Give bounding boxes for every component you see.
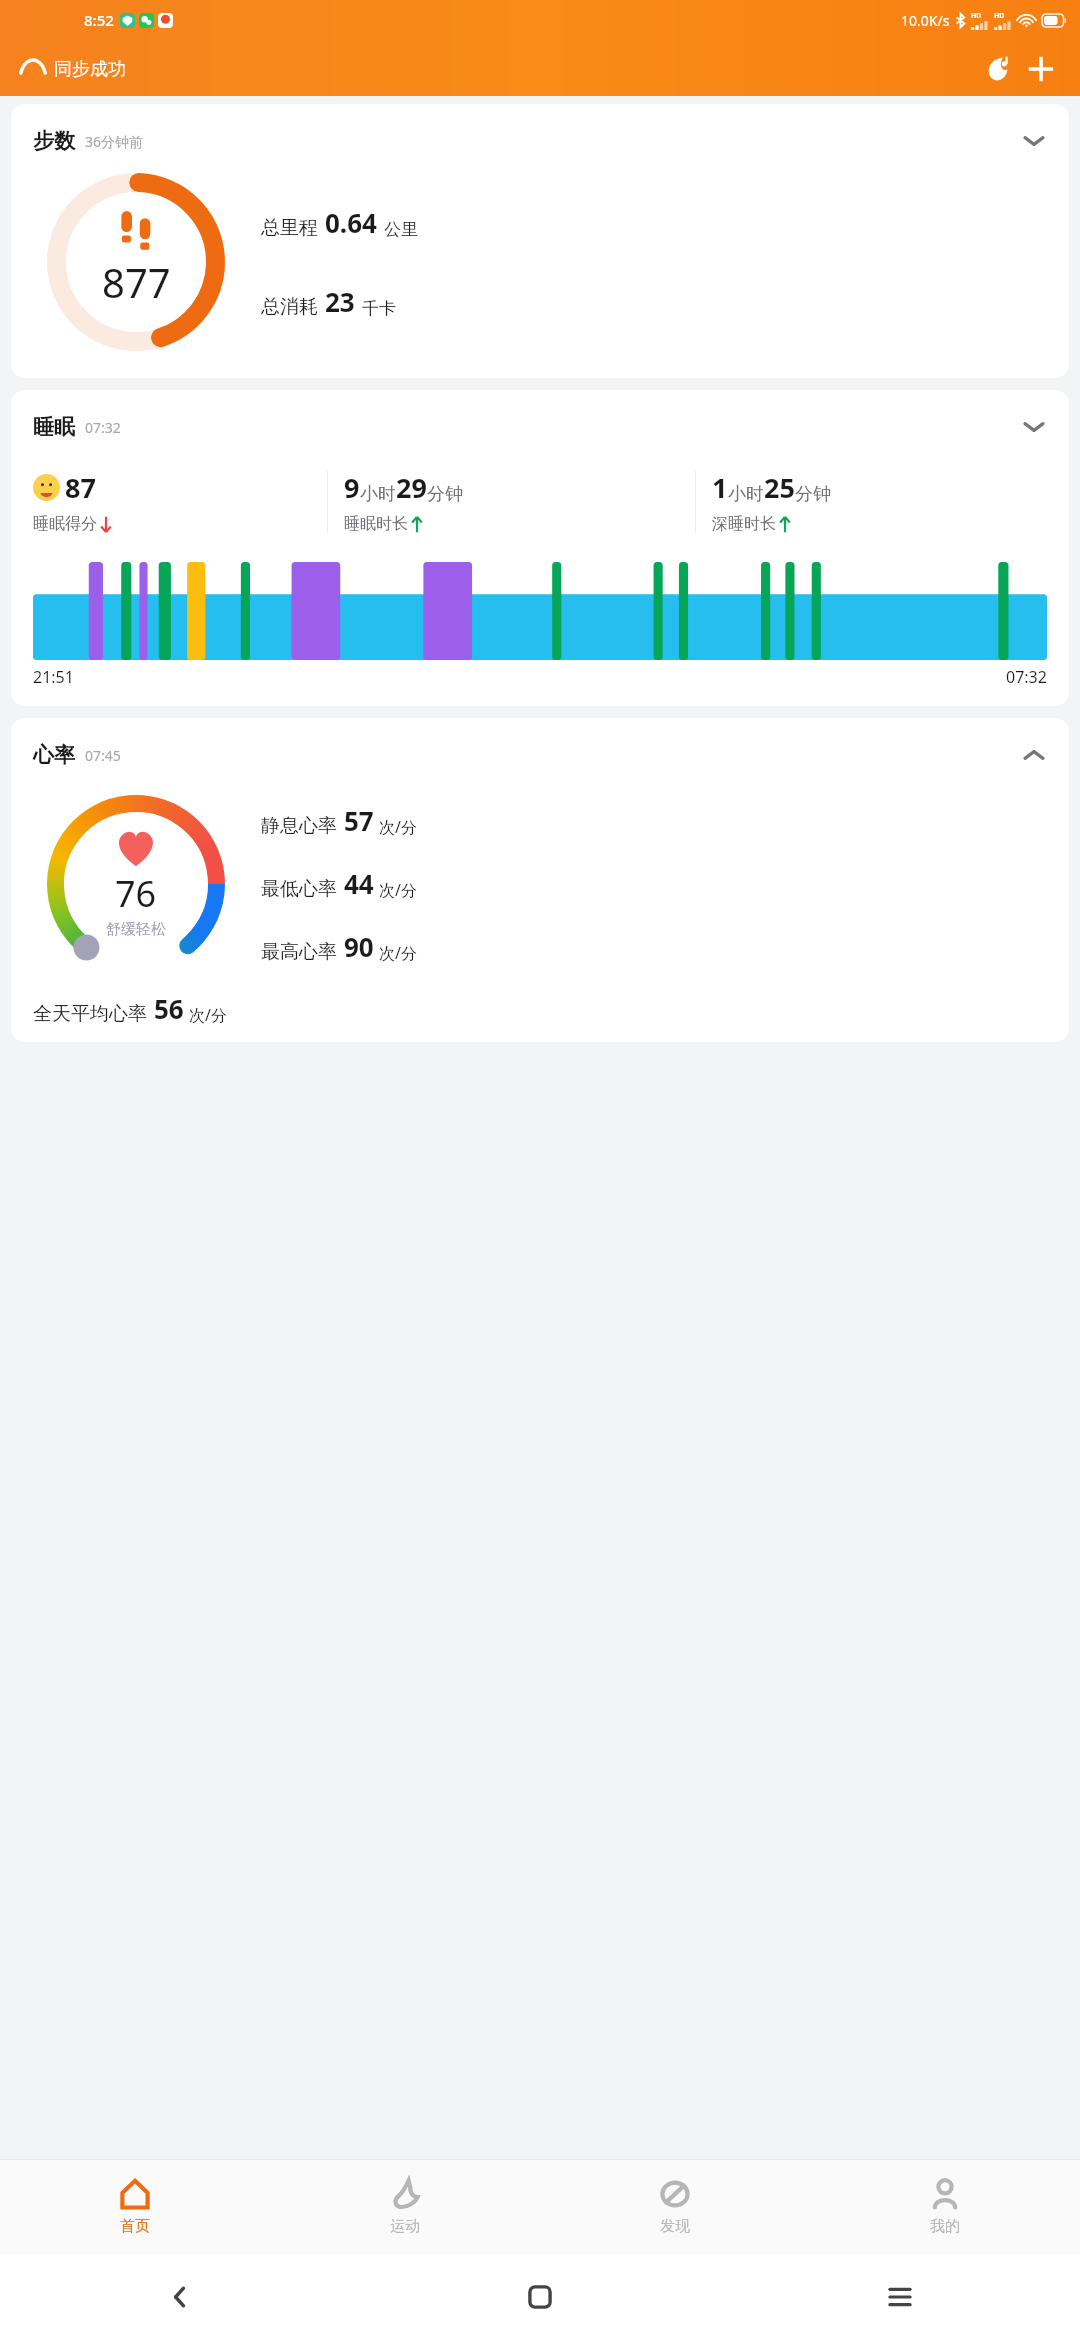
staticText: 07:32 (1006, 666, 1047, 688)
staticText: 最低心率 (261, 877, 337, 901)
staticText: 8:52 (84, 10, 114, 30)
staticText: 全天平均心率 (33, 1002, 147, 1026)
staticText: 877 (102, 255, 171, 309)
staticText: 睡眠 (33, 414, 75, 440)
staticText: 同步成功 (54, 58, 126, 81)
staticText: 心率 (33, 742, 75, 768)
button[interactable]: 睡眠 (11, 390, 1069, 706)
staticText: 0.64 (325, 205, 377, 240)
staticText: 9 (344, 469, 360, 506)
staticText: 静息心率 (261, 814, 337, 838)
staticText: HD (971, 11, 982, 21)
staticText: 分钟 (795, 483, 831, 506)
button[interactable]: Back (0, 2254, 360, 2340)
button[interactable]: 首页 (0, 2160, 270, 2254)
staticText: 44 (344, 866, 374, 901)
button[interactable]: 步数 (11, 104, 1069, 378)
button[interactable]: 我的 (810, 2160, 1080, 2254)
staticText: 次/分 (379, 816, 417, 838)
staticText: 运动 (390, 2217, 420, 2236)
staticText: 次/分 (379, 879, 417, 901)
staticText: 首页 (120, 2217, 150, 2236)
button[interactable]: Recents (720, 2254, 1080, 2340)
button[interactable]: Sleep music (976, 48, 1018, 90)
staticText: 07:32 (85, 418, 121, 437)
staticText: 1 (712, 469, 728, 506)
button[interactable]: 运动 (270, 2160, 540, 2254)
staticText: 次/分 (379, 942, 417, 964)
staticText: 公里 (384, 219, 418, 240)
staticText: 总消耗 (261, 295, 318, 319)
button[interactable]: Add (1020, 48, 1062, 90)
staticText: 千卡 (362, 298, 396, 319)
button[interactable]: 睡眠 (11, 390, 1069, 448)
staticText: 90 (344, 929, 374, 964)
staticText: HD (994, 11, 1005, 21)
staticText: 57 (344, 803, 374, 838)
staticText: 我的 (930, 2217, 960, 2236)
staticText: 76 (115, 869, 157, 918)
staticText: 25 (764, 469, 795, 506)
button[interactable]: 心率 (11, 718, 1069, 776)
staticText: 舒缓轻松 (106, 920, 166, 939)
staticText: 深睡时长 (712, 514, 776, 534)
staticText: 小时 (728, 483, 764, 506)
staticText: 睡眠得分 (33, 514, 97, 534)
button[interactable]: Home (360, 2254, 720, 2340)
staticText: 睡眠时长 (344, 514, 408, 534)
staticText: 36分钟前 (85, 132, 144, 151)
staticText: 56 (154, 991, 184, 1026)
staticText: 总里程 (261, 216, 318, 240)
staticText: 29 (396, 469, 427, 506)
staticText: 87 (65, 469, 96, 506)
staticText: 10.0K/s (901, 11, 950, 30)
staticText: 步数 (33, 128, 75, 154)
staticText: 21:51 (33, 666, 74, 688)
staticText: 23 (325, 284, 355, 319)
button[interactable]: 步数 (11, 104, 1069, 162)
staticText: 分钟 (427, 483, 463, 506)
button[interactable]: 心率 (11, 718, 1069, 1042)
staticText: 最高心率 (261, 940, 337, 964)
staticText: 07:45 (85, 746, 121, 765)
staticText: 次/分 (189, 1004, 227, 1026)
staticText: 发现 (660, 2217, 690, 2236)
button[interactable]: 发现 (540, 2160, 810, 2254)
staticText: 小时 (360, 483, 396, 506)
